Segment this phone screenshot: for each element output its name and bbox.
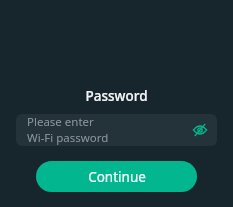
staticText: Please enter Wi-Fi password (27, 114, 109, 146)
staticText: Password (85, 87, 148, 105)
button[interactable]: Please enter Wi-Fi password (16, 114, 217, 146)
staticText: Continue (88, 168, 146, 186)
button[interactable]: Show password (192, 122, 208, 138)
button[interactable]: Continue (36, 161, 197, 192)
